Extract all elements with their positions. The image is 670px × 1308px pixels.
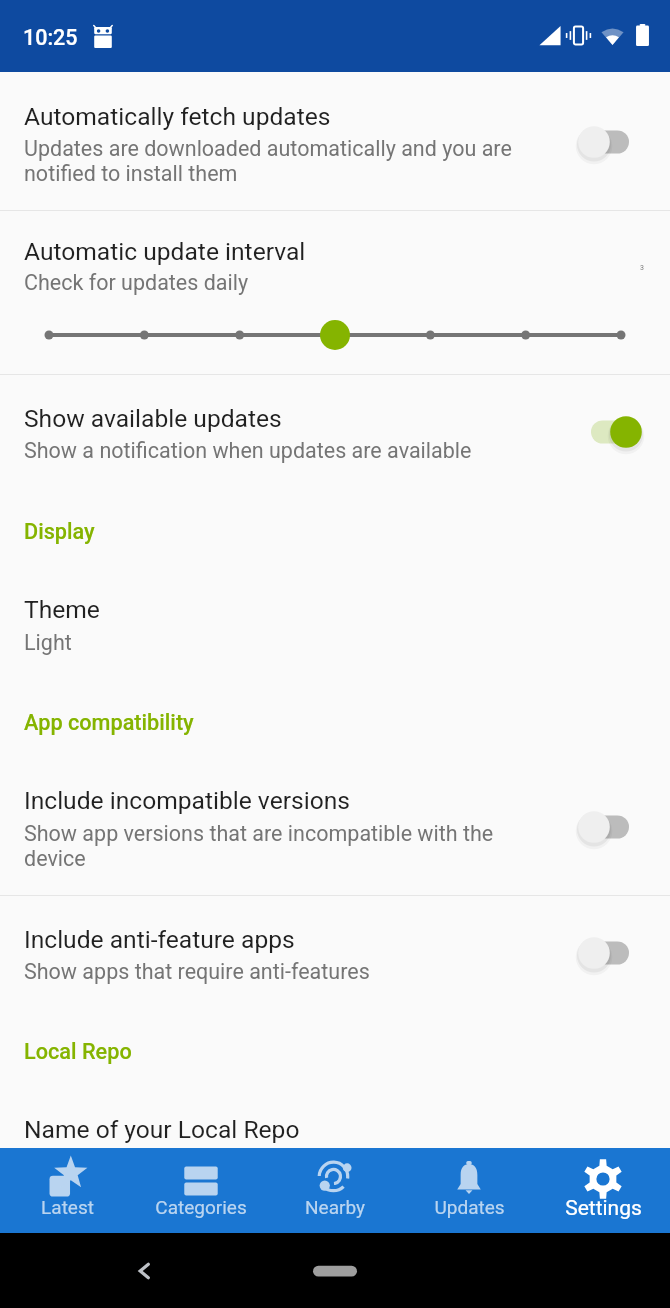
staticText: Updates are downloaded automatically and… xyxy=(24,136,512,186)
button[interactable] xyxy=(0,1098,670,1148)
button[interactable]: Categories xyxy=(134,1148,268,1233)
button[interactable] xyxy=(0,72,670,210)
button[interactable]: Updates xyxy=(402,1148,536,1233)
staticText: Show apps that require anti-features xyxy=(24,959,370,984)
button[interactable]: Switch off xyxy=(567,799,647,855)
staticText: Include incompatible versions xyxy=(24,786,350,815)
button[interactable]: Switch off xyxy=(567,114,647,170)
button[interactable]: Latest xyxy=(0,1148,134,1233)
button[interactable] xyxy=(0,896,670,996)
staticText: Nearby xyxy=(305,1196,365,1218)
staticText: Check for updates daily xyxy=(24,270,249,295)
staticText: Include anti-feature apps xyxy=(24,925,295,954)
staticText: Updates xyxy=(434,1196,505,1218)
staticText: 10:25 xyxy=(23,25,78,50)
button[interactable] xyxy=(0,211,670,374)
staticText: Display xyxy=(24,519,95,544)
staticText: Theme xyxy=(24,595,100,624)
other: Back xyxy=(133,1259,157,1283)
staticText: Settings xyxy=(565,1196,642,1221)
button[interactable] xyxy=(0,375,670,483)
button[interactable]: Nearby xyxy=(268,1148,402,1233)
staticText: Automatic update interval xyxy=(24,237,306,266)
button[interactable] xyxy=(0,770,670,895)
staticText: 3 xyxy=(640,264,644,272)
staticText: Automatically fetch updates xyxy=(24,102,331,131)
staticText: Show a notification when updates are ava… xyxy=(24,438,472,463)
button[interactable] xyxy=(0,580,670,665)
staticText: Show available updates xyxy=(24,404,282,433)
staticText: Categories xyxy=(155,1196,247,1218)
staticText: Latest xyxy=(41,1196,94,1218)
staticText: App compatibility xyxy=(24,710,194,735)
button[interactable]: Switch off xyxy=(567,925,647,981)
other: Home xyxy=(313,1264,357,1278)
staticText: Show app versions that are incompatible … xyxy=(24,821,494,871)
staticText: Light xyxy=(24,630,72,655)
button[interactable]: Switch on xyxy=(573,404,653,460)
staticText: Local Repo xyxy=(24,1039,132,1064)
staticText: Name of your Local Repo xyxy=(24,1115,300,1144)
button[interactable]: Settings xyxy=(536,1148,670,1233)
